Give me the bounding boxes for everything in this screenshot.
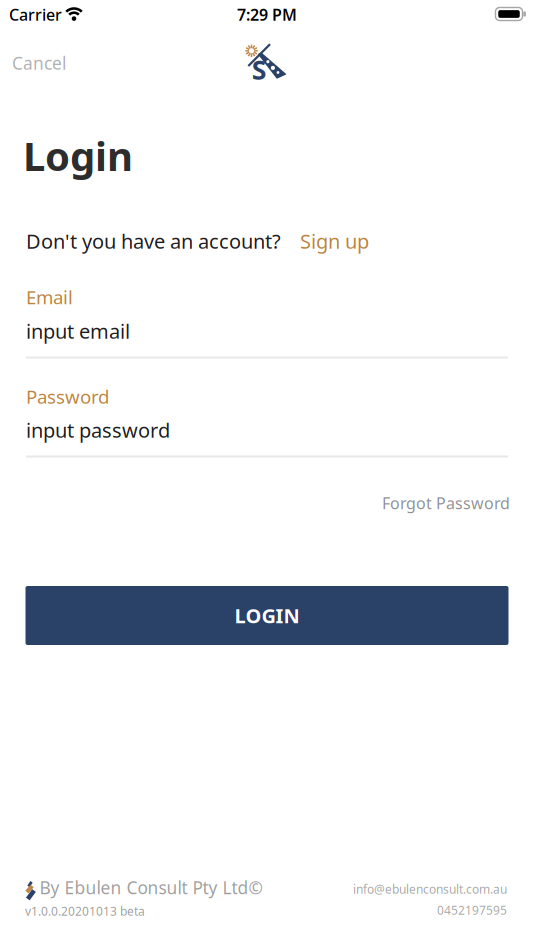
- staticText: info@ebulenconsult.com.au: [353, 881, 507, 897]
- staticText: S: [252, 52, 267, 87]
- button[interactable]: Sign up: [300, 228, 369, 254]
- staticText: 0452197595: [437, 902, 507, 918]
- button[interactable]: Cancel: [12, 51, 66, 74]
- staticText: v1.0.0.20201013 beta: [25, 903, 145, 919]
- button[interactable]: input email: [0, 318, 534, 362]
- staticText: LOGIN: [234, 602, 299, 629]
- staticText: Carrier: [9, 4, 62, 25]
- staticText: input email: [26, 318, 130, 344]
- staticText: Cancel: [12, 51, 66, 74]
- button[interactable]: Forgot Password: [382, 492, 510, 514]
- staticText: By Ebulen Consult Pty Ltd©: [39, 876, 262, 899]
- staticText: 7:29 PM: [237, 4, 297, 25]
- staticText: Forgot Password: [382, 492, 510, 514]
- staticText: Don't you have an account?: [26, 228, 281, 254]
- staticText: Email: [26, 285, 73, 309]
- staticText: input password: [26, 417, 170, 443]
- staticText: Password: [26, 384, 109, 409]
- button[interactable]: input password: [0, 417, 534, 461]
- staticText: Sign up: [300, 228, 369, 254]
- staticText: Login: [23, 129, 133, 182]
- button[interactable]: LOGIN: [25, 586, 508, 645]
